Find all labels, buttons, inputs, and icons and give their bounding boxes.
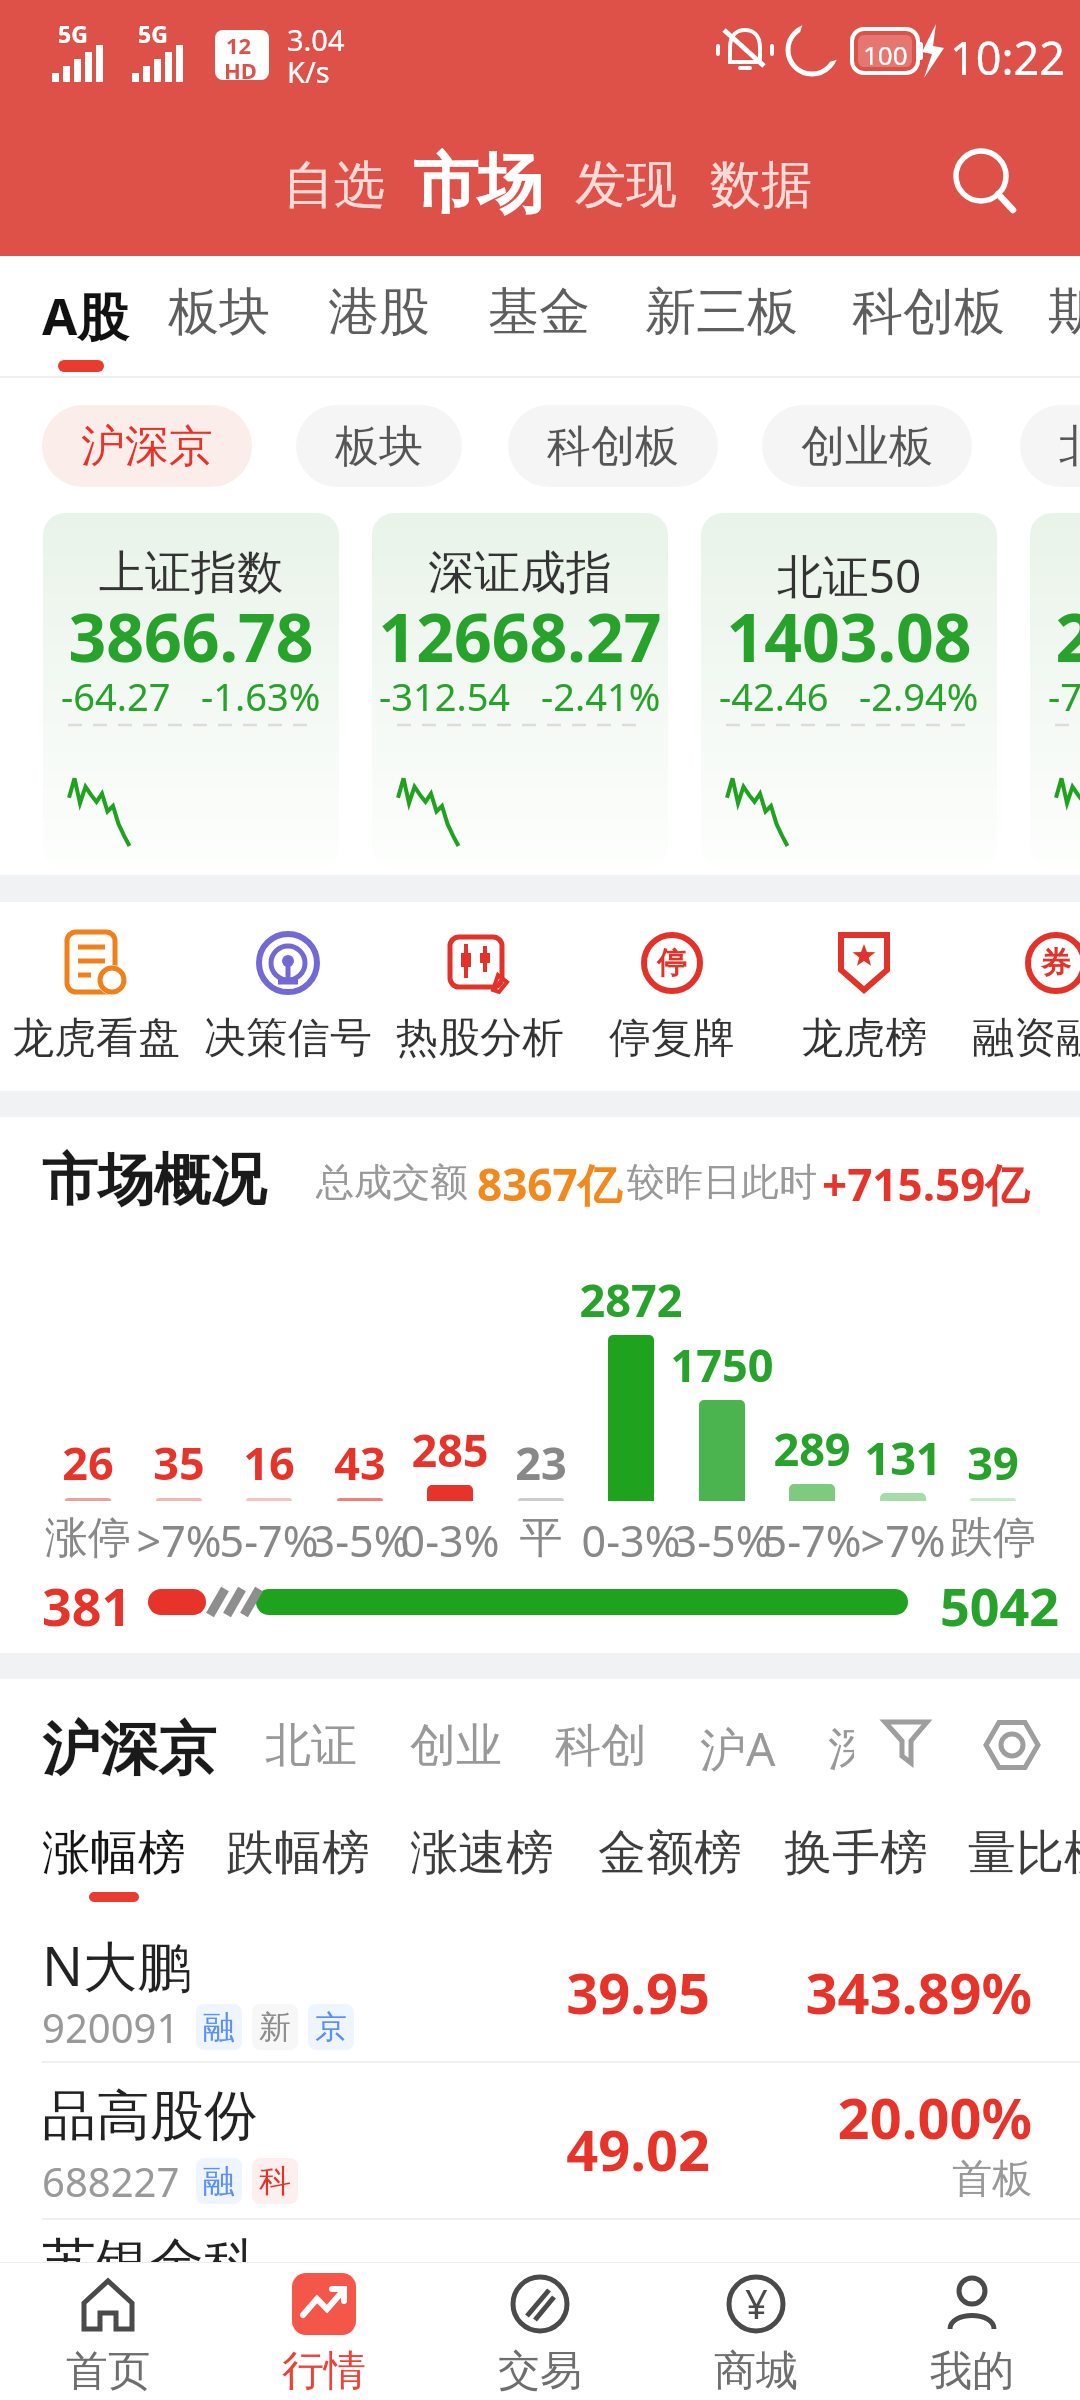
staticText: 8367亿 bbox=[477, 1154, 622, 1214]
staticText: 融资融券 bbox=[972, 1012, 1080, 1065]
button[interactable]: 自选 bbox=[283, 153, 385, 217]
staticText: 较昨日此时 bbox=[627, 1158, 817, 1206]
button[interactable]: 发现 bbox=[575, 153, 677, 217]
staticText: 科创板 bbox=[547, 419, 679, 474]
staticText: -42.46 bbox=[719, 670, 829, 722]
staticText: K/s bbox=[287, 52, 330, 91]
staticText: -2.94% bbox=[859, 670, 979, 722]
staticText: -64.27 bbox=[61, 670, 171, 722]
button[interactable]: 创业板 bbox=[762, 405, 972, 487]
button[interactable]: 深证成指 bbox=[372, 513, 668, 868]
button[interactable]: 创业 bbox=[410, 1717, 502, 1775]
staticText: >7% bbox=[109, 1511, 249, 1570]
button[interactable]: 我的 bbox=[864, 2263, 1080, 2400]
button[interactable]: 交易 bbox=[432, 2263, 648, 2400]
staticText: 10:22 bbox=[950, 27, 1066, 88]
staticText: 1403.08 bbox=[701, 591, 997, 681]
staticText: 920129 bbox=[42, 2302, 180, 2356]
staticText: 沪深京 bbox=[81, 419, 213, 474]
button[interactable]: 首页 bbox=[0, 2263, 216, 2400]
button[interactable]: 苏银金科 bbox=[0, 2220, 1080, 2375]
button[interactable]: 板块 bbox=[296, 405, 462, 487]
staticText: 融 bbox=[203, 2007, 235, 2047]
button[interactable]: 板块 bbox=[168, 280, 270, 344]
button[interactable]: 换手榜 bbox=[784, 1823, 928, 1883]
button[interactable]: 停 bbox=[576, 930, 768, 1065]
staticText: 首板 bbox=[732, 2153, 1032, 2203]
button[interactable]: 沪A bbox=[700, 1717, 776, 1780]
button[interactable] bbox=[945, 142, 1025, 222]
staticText: 北交所 bbox=[1059, 419, 1080, 474]
staticText: 行情 bbox=[282, 2345, 366, 2398]
staticText: 决策信号 bbox=[204, 1012, 372, 1065]
staticText: 285 bbox=[380, 1419, 520, 1480]
staticText: 板块 bbox=[335, 419, 423, 474]
button[interactable]: 数据 bbox=[710, 153, 812, 217]
button[interactable]: 量比榜 bbox=[968, 1823, 1080, 1883]
staticText: 深证成指 bbox=[372, 544, 668, 602]
staticText: 京 bbox=[315, 2007, 347, 2047]
button[interactable]: 北证50 bbox=[701, 513, 997, 868]
button[interactable]: A股 bbox=[42, 280, 129, 350]
staticText: 35 bbox=[109, 1432, 249, 1493]
staticText: 12 bbox=[226, 30, 252, 60]
staticText: 3-5% bbox=[652, 1511, 792, 1570]
staticText: 19.98% bbox=[732, 2268, 1032, 2344]
staticText: 49.02 bbox=[460, 2111, 710, 2187]
staticText: 43 bbox=[290, 1432, 430, 1493]
button[interactable]: 热股分析 bbox=[384, 930, 576, 1065]
button[interactable]: 科创 bbox=[555, 1717, 647, 1775]
staticText: 交易 bbox=[498, 2345, 582, 2398]
staticText: 北证50 bbox=[701, 544, 997, 607]
button[interactable]: 基金 bbox=[488, 280, 590, 344]
button[interactable]: 北证 bbox=[265, 1717, 357, 1775]
staticText: -312.54 bbox=[379, 670, 511, 722]
button[interactable]: 券 bbox=[960, 930, 1080, 1065]
button[interactable]: 跌幅榜 bbox=[226, 1823, 370, 1883]
button[interactable]: 深证综指 bbox=[1030, 513, 1080, 868]
staticText: -1.63% bbox=[201, 670, 321, 722]
staticText: -2.41% bbox=[541, 670, 661, 722]
button[interactable]: 沪深京 bbox=[42, 405, 252, 487]
button[interactable]: 深 bbox=[828, 1721, 854, 1783]
button[interactable] bbox=[882, 1719, 934, 1771]
button[interactable]: 北交所 bbox=[1020, 405, 1080, 487]
button[interactable]: 涨速榜 bbox=[410, 1823, 554, 1883]
staticText: 热股分析 bbox=[396, 1012, 564, 1065]
staticText: 26 bbox=[18, 1432, 158, 1493]
button[interactable]: 品高股份 bbox=[0, 2063, 1080, 2218]
button[interactable]: 涨幅榜 bbox=[42, 1823, 186, 1883]
button[interactable]: 市场 bbox=[413, 143, 543, 225]
staticText: 总成交额 bbox=[316, 1158, 468, 1206]
staticText: 5G bbox=[58, 18, 88, 49]
staticText: 16 bbox=[199, 1432, 339, 1493]
button[interactable]: 金额榜 bbox=[598, 1823, 742, 1883]
button[interactable] bbox=[984, 1717, 1040, 1773]
staticText: 科 bbox=[259, 2161, 291, 2201]
staticText: 131 bbox=[833, 1427, 973, 1488]
button[interactable]: 沪深京 bbox=[42, 1713, 216, 1786]
staticText: 市场概况 bbox=[42, 1145, 266, 1216]
button[interactable]: 新三板 bbox=[645, 280, 798, 344]
button[interactable]: 上证指数 bbox=[43, 513, 339, 868]
button[interactable]: 期 bbox=[1048, 280, 1080, 344]
staticText: 5042 bbox=[940, 1570, 1059, 1641]
staticText: 我的 bbox=[930, 2345, 1014, 2398]
button[interactable]: 科创板 bbox=[508, 405, 718, 487]
button[interactable]: 决策信号 bbox=[192, 930, 384, 1065]
staticText: 苏银金科 bbox=[42, 2230, 258, 2298]
button[interactable]: N大鹏 bbox=[0, 1906, 1080, 2061]
button[interactable]: 港股 bbox=[328, 280, 430, 344]
button[interactable]: ¥ bbox=[648, 2263, 864, 2400]
staticText: +715.59亿 bbox=[822, 1154, 1030, 1214]
staticText: 3866.78 bbox=[43, 591, 339, 681]
button[interactable]: 龙虎看盘 bbox=[0, 930, 192, 1065]
button[interactable]: 科创板 bbox=[852, 280, 1005, 344]
button[interactable]: 行情 bbox=[216, 2263, 432, 2400]
staticText: N大鹏 bbox=[42, 1928, 192, 2002]
staticText: 39 bbox=[923, 1432, 1063, 1493]
button[interactable]: 龙虎榜 bbox=[768, 930, 960, 1065]
staticText: 5G bbox=[138, 18, 168, 49]
